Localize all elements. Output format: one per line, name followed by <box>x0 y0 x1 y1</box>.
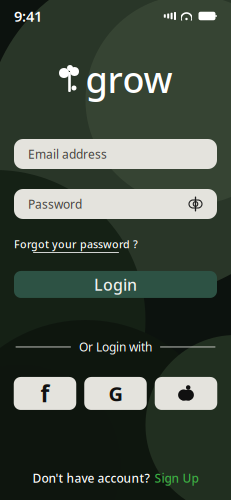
button[interactable]: Forgot your password ? <box>14 237 138 253</box>
button[interactable]: Email address <box>14 139 217 169</box>
button[interactable]: Login <box>14 271 217 298</box>
button[interactable]: Facebook <box>14 377 76 410</box>
staticText: 9:41 <box>14 6 42 26</box>
button[interactable]: Password <box>14 189 217 219</box>
staticText: Sign Up <box>154 470 198 486</box>
button[interactable]: Sign Up <box>154 470 198 486</box>
staticText: Don't have account? <box>32 470 149 486</box>
staticText: Forgot your password ? <box>14 237 138 251</box>
button[interactable]: Apple <box>155 377 217 410</box>
staticText: Login <box>94 274 137 295</box>
staticText: grow <box>85 55 172 103</box>
staticText: f <box>40 378 49 408</box>
staticText: G <box>108 380 122 407</box>
staticText: Email address <box>28 146 107 162</box>
staticText: Or Login with <box>79 339 152 355</box>
button[interactable]: Google <box>84 377 147 410</box>
staticText: Password <box>28 196 82 212</box>
